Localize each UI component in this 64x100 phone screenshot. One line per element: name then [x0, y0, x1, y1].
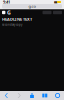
button[interactable]: Share [26, 93, 38, 98]
button[interactable]: Back [0, 93, 13, 98]
button[interactable]: Forward [13, 93, 26, 98]
staticText: G [7, 9, 11, 16]
staticText: HEADLINE TEXT [2, 16, 32, 22]
button[interactable]: Bookmarks [38, 93, 51, 98]
staticText: secondary copy [2, 23, 22, 26]
staticText: ▮▮▮ [54, 0, 57, 3]
button[interactable]: Tabs [51, 93, 64, 98]
staticText: 9:41 [3, 0, 10, 5]
staticText: g.co [28, 4, 35, 9]
